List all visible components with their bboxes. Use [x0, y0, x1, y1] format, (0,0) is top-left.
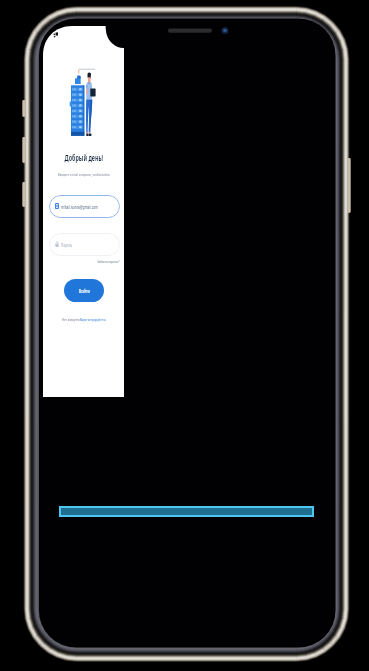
- staticText: Введите e-mail и пароль, чтобы войти: [58, 172, 110, 178]
- staticText: Пароль: [61, 242, 72, 248]
- staticText: Войти: [79, 287, 90, 295]
- staticText: mihail.ivanov@gmail.com: [61, 204, 98, 210]
- button[interactable]: mihail.ivanov@gmail.com: [49, 195, 120, 218]
- staticText: Добрый день!: [65, 152, 103, 163]
- button[interactable]: Пароль: [49, 233, 120, 256]
- button[interactable]: Зарегистрируйтесь: [80, 317, 119, 323]
- button[interactable]: Забыли пароль?: [86, 259, 120, 265]
- button[interactable]: Войти: [64, 279, 104, 302]
- staticText: Нет аккаунта?: [62, 317, 81, 323]
